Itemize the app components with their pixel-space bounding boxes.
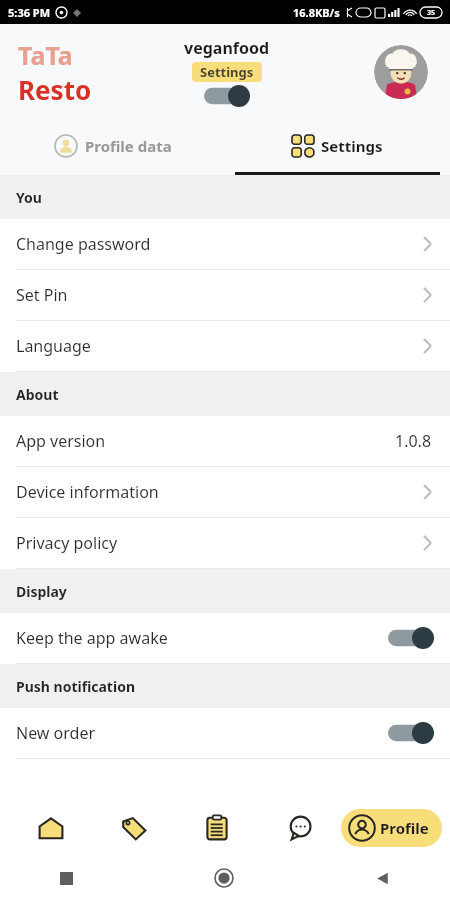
button[interactable] — [388, 722, 434, 744]
button[interactable]: Change password — [0, 219, 450, 270]
staticText: Settings — [321, 136, 383, 156]
button[interactable]: Profile — [341, 809, 442, 847]
staticText: Resto — [18, 72, 92, 107]
staticText: Push notification — [16, 677, 135, 696]
staticText: 1.0.8 — [395, 430, 432, 452]
staticText: App version — [16, 430, 395, 452]
button[interactable]: Chat — [258, 800, 341, 856]
staticText: Device information — [16, 481, 423, 503]
staticText: About — [16, 385, 59, 404]
button[interactable] — [204, 85, 250, 107]
staticText: veganfood — [184, 37, 270, 59]
button[interactable]: Keep the app awake — [0, 613, 450, 664]
staticText: Settings — [200, 63, 254, 81]
staticText: TaTa — [18, 38, 73, 72]
button[interactable]: Orders — [175, 800, 258, 856]
button[interactable]: Offers — [92, 800, 175, 856]
button[interactable]: Home — [10, 800, 92, 856]
button[interactable]: Set Pin — [0, 270, 450, 321]
staticText: 5:36 PM — [8, 5, 51, 20]
button[interactable]: Language — [0, 321, 450, 372]
staticText: Profile data — [85, 136, 172, 156]
button[interactable]: Profile data — [0, 120, 225, 172]
staticText: Change password — [16, 233, 423, 255]
button[interactable]: Profile avatar — [374, 45, 428, 99]
staticText: 16.8KB/s — [293, 5, 340, 20]
staticText: 35 — [427, 8, 436, 18]
staticText: Privacy policy — [16, 532, 423, 554]
button[interactable]: Device information — [0, 467, 450, 518]
staticText: New order — [16, 722, 388, 744]
staticText: Language — [16, 335, 423, 357]
staticText: Display — [16, 582, 67, 601]
staticText: Set Pin — [16, 284, 423, 306]
staticText: Profile — [380, 818, 429, 838]
button[interactable]: Settings — [225, 120, 450, 172]
button[interactable]: New order — [0, 708, 450, 759]
button[interactable]: App version — [0, 416, 450, 467]
button[interactable] — [388, 627, 434, 649]
button[interactable]: Privacy policy — [0, 518, 450, 569]
staticText: You — [16, 188, 42, 207]
staticText: Keep the app awake — [16, 627, 388, 649]
